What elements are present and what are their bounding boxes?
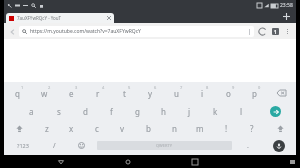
staticText: 7auXFYwRQcY - YouT — [17, 15, 62, 21]
staticText: 0 — [258, 85, 261, 90]
staticText: https://m.youtube.com/watch?v=7auXFYwRQc… — [30, 28, 248, 35]
button[interactable]: Shift — [265, 120, 296, 137]
button[interactable]: h — [150, 102, 176, 120]
button[interactable]: ?123 — [4, 137, 41, 154]
button[interactable]: Keyboard — [287, 155, 298, 168]
staticText: . — [247, 141, 249, 151]
staticText: 23:58 — [280, 2, 293, 9]
staticText: 4 — [102, 85, 105, 90]
button[interactable]: Go — [254, 102, 296, 120]
button[interactable]: Back — [54, 155, 67, 168]
staticText: 1 — [21, 85, 24, 90]
button[interactable]: t — [111, 84, 137, 102]
staticText: 7 — [180, 85, 183, 90]
button[interactable]: n — [161, 120, 187, 137]
staticText: / — [53, 141, 56, 151]
staticText: c — [95, 123, 99, 134]
staticText: 5 — [128, 85, 131, 90]
staticText: u — [174, 88, 179, 99]
staticText: i — [201, 88, 204, 99]
staticText: 9 — [232, 85, 235, 90]
staticText: e — [69, 88, 74, 99]
button[interactable]: ? — [239, 120, 265, 137]
staticText: d — [83, 106, 88, 117]
staticText: a — [29, 106, 34, 117]
staticText: ! — [225, 123, 228, 134]
staticText: y — [148, 88, 153, 99]
button[interactable]: y — [137, 84, 163, 102]
staticText: z — [45, 123, 49, 134]
button[interactable]: w — [31, 84, 58, 102]
button[interactable]: Home — [121, 155, 134, 168]
button[interactable]: o — [215, 84, 241, 102]
staticText: 1 — [274, 29, 277, 35]
staticText: ? — [250, 123, 254, 134]
button[interactable]: j — [176, 102, 202, 120]
staticText: n — [172, 123, 177, 134]
button[interactable]: Shift — [4, 120, 34, 137]
button[interactable]: v — [109, 120, 135, 137]
button[interactable]: d — [72, 102, 98, 120]
staticText: v — [120, 123, 125, 134]
button[interactable]: a — [18, 102, 45, 120]
staticText: g — [135, 106, 140, 117]
staticText: h — [161, 106, 166, 117]
staticText: 2 — [48, 85, 51, 90]
staticText: s — [57, 106, 61, 117]
button[interactable]: Back — [7, 26, 18, 37]
button[interactable]: i — [189, 84, 215, 102]
button[interactable]: ! — [213, 120, 239, 137]
button[interactable]: q — [4, 84, 31, 102]
button[interactable]: Tabs — [269, 25, 282, 38]
staticText: b — [146, 123, 151, 134]
staticText: r — [96, 88, 100, 99]
button[interactable]: QWERTY — [97, 141, 232, 150]
button[interactable]: u — [163, 84, 189, 102]
staticText: l — [240, 106, 243, 117]
button[interactable]: Backspace — [267, 84, 296, 102]
button[interactable]: g — [124, 102, 150, 120]
staticText: k — [213, 106, 218, 117]
staticText: j — [188, 106, 191, 117]
button[interactable]: Voice input — [261, 137, 296, 154]
other: Close tab — [107, 16, 111, 20]
button[interactable]: l — [228, 102, 254, 120]
button[interactable]: f — [98, 102, 124, 120]
staticText: QWERTY — [156, 143, 173, 148]
button[interactable]: https://m.youtube.com/watch?v=7auXFYwRQc… — [19, 26, 254, 37]
staticText: x — [69, 123, 74, 134]
button[interactable]: Recent apps — [188, 155, 201, 168]
button[interactable]: New tab — [282, 12, 291, 21]
staticText: p — [252, 88, 257, 99]
button[interactable]: k — [202, 102, 228, 120]
button[interactable]: More options — [282, 26, 293, 37]
staticText: o — [226, 88, 231, 99]
staticText: w — [41, 88, 48, 99]
staticText: m — [196, 123, 204, 134]
button[interactable]: r — [85, 84, 111, 102]
button[interactable]: 7auXFYwRQcY - YouT — [6, 13, 114, 23]
button[interactable]: z — [34, 120, 59, 137]
button[interactable]: c — [84, 120, 109, 137]
staticText: ?123 — [17, 142, 29, 149]
button[interactable]: / — [41, 137, 68, 154]
button[interactable]: m — [187, 120, 213, 137]
button[interactable]: x — [59, 120, 84, 137]
button[interactable]: Reload — [256, 25, 269, 38]
staticText: 8 — [206, 85, 209, 90]
staticText: 6 — [154, 85, 157, 90]
staticText: q — [15, 88, 20, 99]
staticText: 3 — [75, 85, 78, 90]
staticText: f — [110, 106, 113, 117]
button[interactable]: p — [241, 84, 267, 102]
button[interactable]: e — [58, 84, 85, 102]
button[interactable]: b — [135, 120, 161, 137]
button[interactable]: Emoji — [68, 137, 95, 154]
button[interactable]: s — [45, 102, 72, 120]
staticText: t — [123, 88, 126, 99]
